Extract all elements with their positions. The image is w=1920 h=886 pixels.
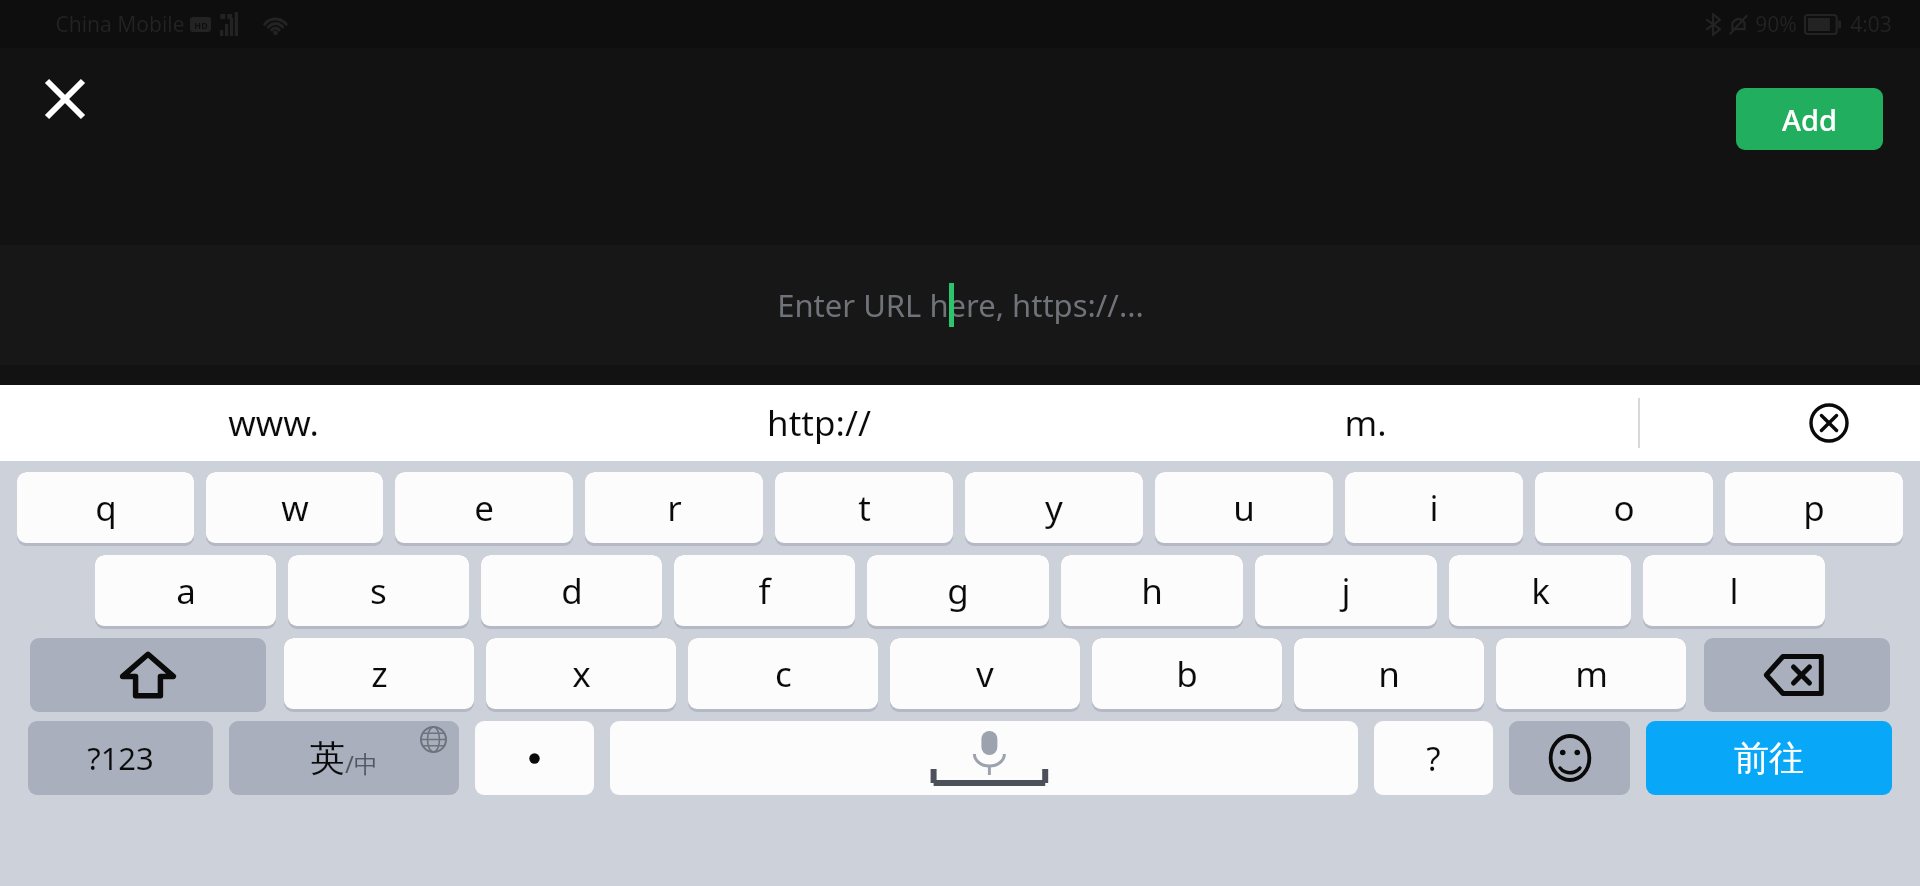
- button[interactable]: www.: [0, 385, 546, 461]
- button[interactable]: k: [1449, 555, 1631, 629]
- button[interactable]: a: [95, 555, 276, 629]
- staticText: China Mobile: [55, 10, 185, 39]
- staticText: c: [775, 650, 792, 698]
- staticText: s: [370, 567, 387, 615]
- button[interactable]: 英: [229, 721, 459, 795]
- staticText: 4:03: [1850, 10, 1892, 39]
- button[interactable]: f: [674, 555, 855, 629]
- staticText: d: [561, 567, 583, 615]
- button[interactable]: Emoji: [1509, 721, 1630, 795]
- button[interactable]: r: [585, 472, 763, 546]
- button[interactable]: u: [1155, 472, 1333, 546]
- button[interactable]: q: [17, 472, 194, 546]
- button[interactable]: v: [890, 638, 1080, 712]
- button[interactable]: m.: [1092, 385, 1638, 461]
- button[interactable]: z: [284, 638, 474, 712]
- staticText: i: [1429, 484, 1439, 532]
- staticText: a: [176, 567, 196, 615]
- staticText: 90%: [1755, 10, 1797, 39]
- staticText: j: [1341, 567, 1351, 615]
- button[interactable]: x: [486, 638, 676, 712]
- staticText: h: [1141, 567, 1163, 615]
- staticText: r: [667, 484, 682, 532]
- button[interactable]: i: [1345, 472, 1523, 546]
- staticText: g: [947, 567, 969, 615]
- button[interactable]: Space: [610, 721, 1358, 795]
- button[interactable]: h: [1061, 555, 1243, 629]
- staticText: Enter URL here, https://...: [777, 284, 1144, 326]
- staticText: f: [758, 567, 771, 615]
- button[interactable]: d: [481, 555, 662, 629]
- staticText: l: [1729, 567, 1739, 615]
- button[interactable]: l: [1643, 555, 1825, 629]
- staticText: http://: [767, 399, 871, 447]
- staticText: /中: [345, 747, 378, 780]
- button[interactable]: n: [1294, 638, 1484, 712]
- button[interactable]: s: [288, 555, 469, 629]
- staticText: x: [572, 650, 591, 698]
- button[interactable]: t: [775, 472, 953, 546]
- staticText: z: [371, 650, 388, 698]
- staticText: w: [281, 484, 309, 532]
- button[interactable]: Period: [475, 721, 594, 795]
- button[interactable]: Shift: [30, 638, 266, 712]
- staticText: m.: [1344, 399, 1387, 447]
- button[interactable]: Clear text: [1792, 386, 1866, 460]
- button[interactable]: Close: [28, 62, 102, 136]
- button[interactable]: e: [395, 472, 573, 546]
- button[interactable]: http://: [546, 385, 1092, 461]
- button[interactable]: Enter URL here, https://...: [0, 245, 1920, 365]
- staticText: ?: [1426, 736, 1441, 781]
- button[interactable]: p: [1725, 472, 1903, 546]
- staticText: www.: [228, 399, 319, 447]
- button[interactable]: m: [1496, 638, 1686, 712]
- staticText: y: [1045, 484, 1063, 532]
- staticText: 前往: [1734, 736, 1804, 780]
- staticText: o: [1613, 484, 1635, 532]
- button[interactable]: g: [867, 555, 1049, 629]
- staticText: m: [1575, 650, 1608, 698]
- staticText: q: [95, 484, 117, 532]
- button[interactable]: y: [965, 472, 1143, 546]
- staticText: n: [1378, 650, 1400, 698]
- staticText: 英: [310, 736, 345, 780]
- button[interactable]: Add: [1736, 88, 1883, 150]
- staticText: b: [1176, 650, 1198, 698]
- staticText: u: [1233, 484, 1255, 532]
- staticText: k: [1531, 567, 1550, 615]
- staticText: p: [1803, 484, 1825, 532]
- button[interactable]: ?123: [28, 721, 213, 795]
- button[interactable]: o: [1535, 472, 1713, 546]
- button[interactable]: 前往: [1646, 721, 1892, 795]
- button[interactable]: w: [206, 472, 383, 546]
- staticText: t: [858, 484, 871, 532]
- button[interactable]: b: [1092, 638, 1282, 712]
- button[interactable]: c: [688, 638, 878, 712]
- button[interactable]: ?: [1374, 721, 1493, 795]
- staticText: v: [976, 650, 994, 698]
- staticText: HD: [194, 19, 208, 31]
- staticText: e: [474, 484, 494, 532]
- staticText: Add: [1782, 100, 1837, 139]
- staticText: ?123: [87, 737, 154, 779]
- button[interactable]: j: [1255, 555, 1437, 629]
- button[interactable]: Backspace: [1704, 638, 1890, 712]
